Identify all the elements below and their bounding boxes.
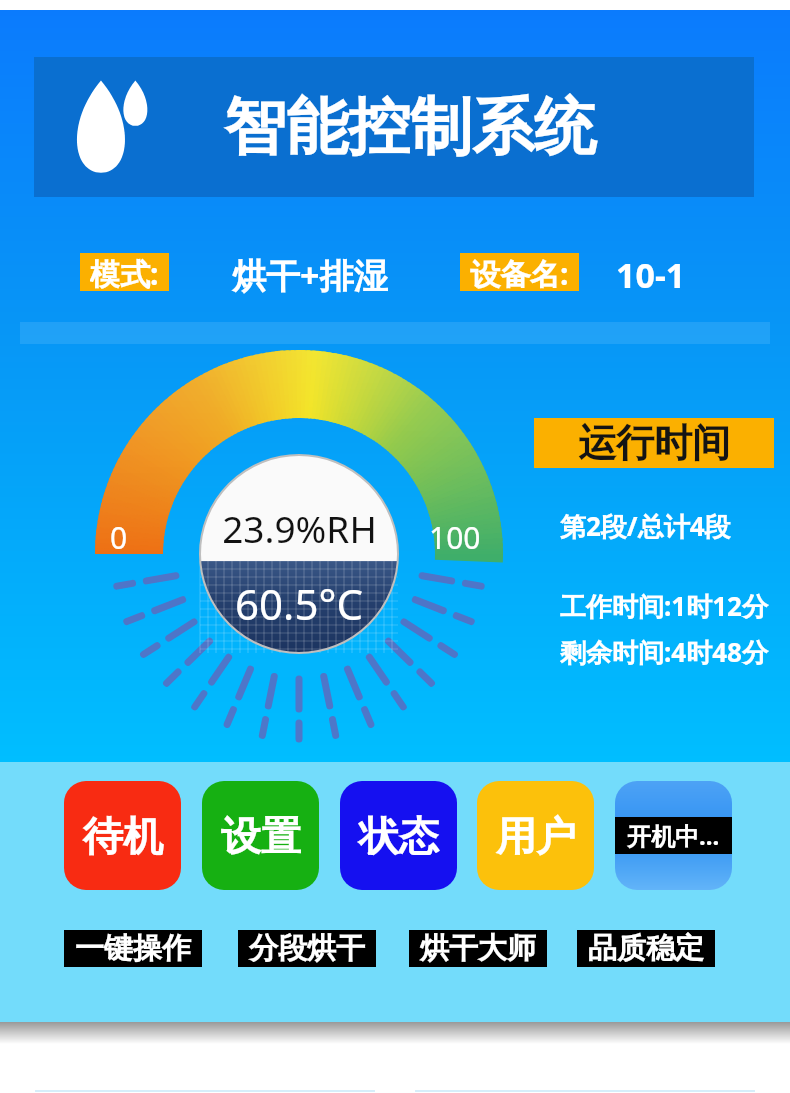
- staticText: 一键操作: [75, 930, 191, 967]
- button[interactable]: 待机: [64, 781, 181, 890]
- staticText: 运行时间: [578, 419, 730, 467]
- staticText: 品质稳定: [588, 930, 704, 967]
- staticText: 0: [110, 517, 128, 558]
- button[interactable]: 状态: [340, 781, 457, 890]
- button[interactable]: 用户: [477, 781, 594, 890]
- staticText: 用户: [496, 811, 576, 861]
- staticText: 10-1: [616, 252, 686, 298]
- button[interactable]: 品质稳定: [588, 930, 704, 967]
- staticText: 60.5°C: [235, 575, 363, 632]
- button[interactable]: 模式:: [90, 253, 159, 291]
- staticText: 模式:: [90, 253, 159, 291]
- staticText: 智能控制系统: [224, 88, 596, 166]
- other: Humidity: [70, 79, 156, 175]
- staticText: 烘干+排湿: [232, 252, 388, 298]
- staticText: 设置: [221, 811, 301, 861]
- button[interactable]: 运行时间: [534, 418, 774, 468]
- staticText: 烘干大师: [420, 930, 536, 967]
- button[interactable]: 烘干大师: [420, 930, 536, 967]
- staticText: 剩余时间:4时48分: [560, 634, 768, 670]
- staticText: 分段烘干: [249, 930, 365, 967]
- button[interactable]: 一键操作: [75, 930, 191, 967]
- button[interactable]: 开机中...: [615, 781, 732, 890]
- staticText: 开机中...: [627, 819, 720, 852]
- staticText: 工作时间:1时12分: [560, 588, 768, 624]
- button[interactable]: Humidity: [34, 57, 754, 197]
- staticText: 第2段/总计4段: [560, 508, 731, 544]
- staticText: 待机: [83, 811, 163, 861]
- staticText: 100: [429, 517, 481, 558]
- button[interactable]: 设置: [202, 781, 319, 890]
- staticText: 设备名:: [470, 253, 569, 291]
- staticText: 状态: [359, 811, 439, 861]
- button[interactable]: 设备名:: [470, 253, 569, 291]
- button[interactable]: 分段烘干: [249, 930, 365, 967]
- staticText: 23.9%RH: [222, 503, 377, 553]
